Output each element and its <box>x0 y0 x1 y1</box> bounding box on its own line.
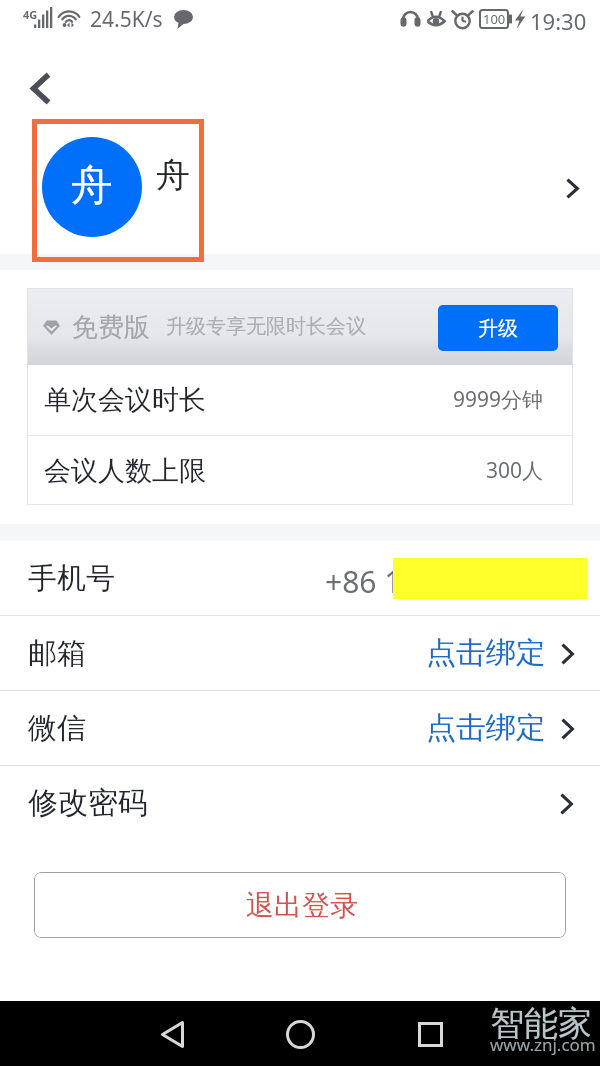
button[interactable]: 修改密码 <box>0 766 600 840</box>
staticText: 微信 <box>28 710 86 747</box>
staticText: 免费版 <box>72 311 150 344</box>
button[interactable]: 手机号 <box>0 541 600 616</box>
staticText: 智能家 <box>490 1002 592 1045</box>
staticText: 升级 <box>478 316 518 341</box>
staticText: 会议人数上限 <box>44 454 206 488</box>
staticText: 点击绑定 <box>426 709 546 747</box>
staticText: 舟 <box>156 154 190 197</box>
button[interactable]: 升级 <box>438 305 558 351</box>
button[interactable]: 舟 <box>0 119 600 262</box>
staticText: +86 1 <box>325 561 402 602</box>
button[interactable]: Back <box>16 64 64 112</box>
staticText: 4G <box>23 7 38 22</box>
staticText: www.znj.com <box>490 1033 596 1056</box>
staticText: 退出登录 <box>246 888 358 923</box>
staticText: 升级专享无限时长会议 <box>166 314 366 339</box>
button[interactable]: 微信 <box>0 691 600 765</box>
staticText: 24.5K/s <box>90 5 163 34</box>
button[interactable]: 单次会议时长 <box>27 365 573 434</box>
staticText: 修改密码 <box>28 784 148 822</box>
button[interactable]: 邮箱 <box>0 616 600 690</box>
staticText: 100 <box>483 10 506 28</box>
staticText: 点击绑定 <box>426 634 546 672</box>
staticText: 邮箱 <box>28 635 86 672</box>
button[interactable]: Back <box>148 1010 196 1058</box>
staticText: 手机号 <box>28 560 115 597</box>
staticText: 9999分钟 <box>453 385 544 414</box>
button[interactable]: Recents <box>404 1010 452 1058</box>
staticText: 单次会议时长 <box>44 383 206 417</box>
button[interactable]: 退出登录 <box>34 872 566 938</box>
staticText: 300人 <box>486 456 544 485</box>
button[interactable]: 会议人数上限 <box>27 436 573 505</box>
staticText: 19:30 <box>530 6 587 36</box>
staticText: 舟 <box>71 160 113 213</box>
button[interactable]: Home <box>276 1010 324 1058</box>
